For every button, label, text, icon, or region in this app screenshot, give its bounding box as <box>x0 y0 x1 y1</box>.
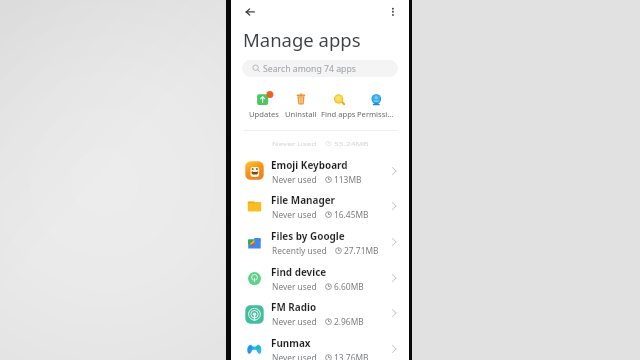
staticText: Never used <box>272 316 317 327</box>
button[interactable]: Uninstall <box>282 89 319 119</box>
staticText: Permissi… <box>357 109 394 119</box>
staticText: Uninstall <box>285 109 317 119</box>
staticText: Recently used <box>272 245 327 256</box>
staticText: 113MB <box>334 174 362 185</box>
button[interactable]: Files by Google <box>231 224 409 260</box>
staticText: FM Radio <box>271 300 317 313</box>
button[interactable]: Find apps <box>320 89 357 119</box>
button[interactable]: FM Radio <box>231 295 409 331</box>
button[interactable]: Emoji Keyboard <box>231 153 409 189</box>
button[interactable]: Never used <box>231 135 409 147</box>
staticText: 55.24MB <box>334 139 369 147</box>
staticText: Find apps <box>321 109 356 119</box>
staticText: Never used <box>272 352 317 360</box>
staticText: 27.71MB <box>344 245 379 256</box>
button[interactable]: Permissi… <box>357 89 394 119</box>
staticText: Funmax <box>271 336 311 349</box>
button[interactable]: Back <box>239 2 259 22</box>
staticText: Never used <box>272 281 317 292</box>
staticText: Never used <box>272 174 317 185</box>
staticText: Never used <box>272 209 317 220</box>
button[interactable]: Updates <box>245 89 282 119</box>
button[interactable]: Search among 74 apps <box>242 60 398 77</box>
staticText: Never used <box>272 139 317 147</box>
staticText: Emoji Keyboard <box>271 158 348 171</box>
staticText: Find device <box>271 265 327 278</box>
staticText: 16.45MB <box>334 209 369 220</box>
staticText: Manage apps <box>243 27 361 52</box>
staticText: Updates <box>249 109 279 119</box>
staticText: Search among 74 apps <box>263 63 356 75</box>
staticText: 6.60MB <box>334 281 364 292</box>
staticText: File Manager <box>271 193 335 206</box>
button[interactable]: File Manager <box>231 188 409 224</box>
staticText: 2.96MB <box>334 316 364 327</box>
button[interactable]: Funmax <box>231 331 409 360</box>
staticText: Files by Google <box>271 229 345 242</box>
staticText: 13.76MB <box>334 352 369 360</box>
button[interactable]: More options <box>383 2 403 22</box>
button[interactable]: Find device <box>231 260 409 296</box>
